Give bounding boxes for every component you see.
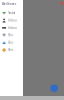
staticText: Inbox: [8, 26, 16, 30]
staticText: Bin: [8, 48, 13, 52]
staticText: Social: [8, 11, 15, 15]
staticText: Bin: [8, 33, 13, 37]
staticText: Inbox: [8, 19, 16, 22]
staticText: Mailboxes: [2, 2, 16, 6]
button[interactable]: Bin: [0, 46, 23, 54]
button[interactable]: Social: [0, 9, 23, 17]
button[interactable]: Inbox: [0, 17, 23, 24]
button[interactable]: Bin: [0, 31, 23, 39]
button[interactable]: Compose: [50, 84, 58, 92]
button[interactable]: Inbox: [0, 24, 23, 31]
staticText: Bin: [8, 41, 13, 44]
button[interactable]: Bin: [0, 39, 23, 46]
